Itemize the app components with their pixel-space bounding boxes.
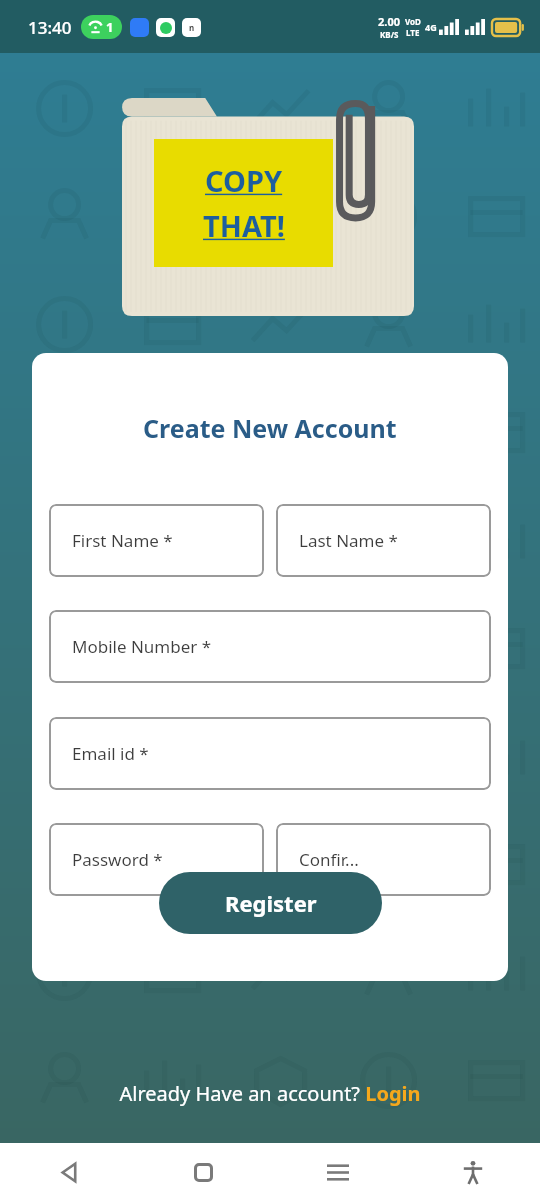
button[interactable]: Accessibility	[446, 1145, 500, 1199]
button[interactable]: First Name *	[49, 504, 264, 577]
staticText: Password *	[72, 848, 163, 871]
button[interactable]: Home	[176, 1145, 230, 1199]
staticText: 4G	[425, 21, 437, 33]
staticText: THAT!	[203, 206, 285, 245]
button[interactable]: Email id *	[49, 717, 491, 790]
staticText: Register	[225, 888, 317, 918]
staticText: n	[189, 22, 195, 33]
staticText: Mobile Number *	[72, 635, 212, 658]
staticText: Confir...	[299, 848, 359, 871]
button[interactable]: Back	[41, 1145, 95, 1199]
staticText: Create New Account	[143, 411, 397, 445]
button[interactable]: Confir...	[276, 823, 491, 896]
button[interactable]: Last Name *	[276, 504, 491, 577]
staticText: First Name *	[72, 529, 173, 552]
staticText: VoD	[405, 16, 421, 27]
staticText: Already Have an account? Login	[119, 1080, 421, 1107]
staticText: Last Name *	[299, 529, 398, 552]
button[interactable]: Mobile Number *	[49, 610, 491, 683]
staticText: 2.00	[378, 14, 400, 29]
staticText: 13:40	[28, 16, 72, 39]
button[interactable]: Recent apps	[311, 1145, 365, 1199]
button[interactable]: Password *	[49, 823, 264, 896]
button[interactable]: Already Have an account? Login	[111, 1076, 429, 1111]
staticText: Email id *	[72, 742, 149, 765]
staticText: COPY	[205, 161, 283, 200]
button[interactable]: Register	[159, 872, 382, 934]
staticText: LTE	[406, 27, 420, 38]
staticText: KB/S	[380, 29, 399, 40]
staticText: 1	[106, 18, 114, 36]
